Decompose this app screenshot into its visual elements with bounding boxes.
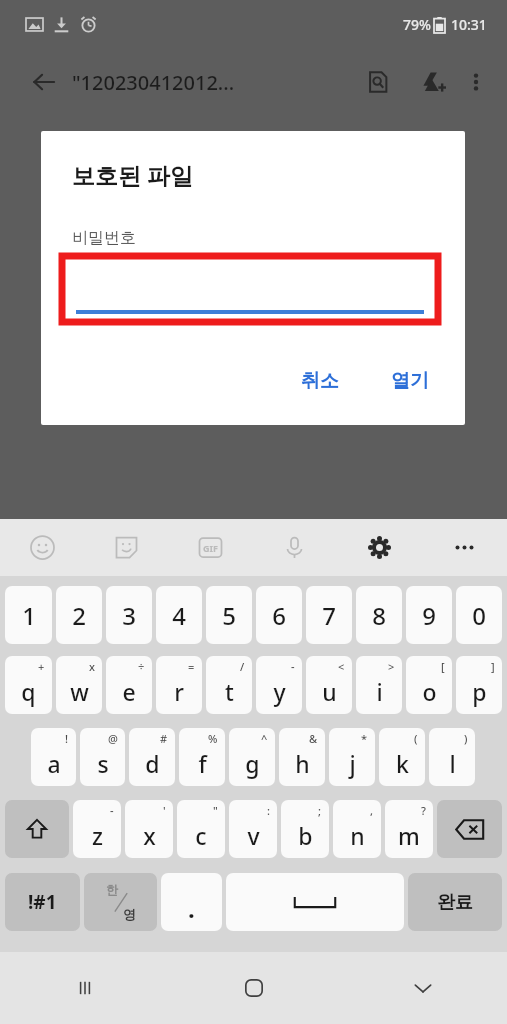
button[interactable]: 3 — [106, 586, 152, 644]
button[interactable]: 열기 — [377, 361, 443, 401]
staticText: - — [291, 659, 295, 674]
staticText: - — [110, 803, 114, 818]
staticText: l — [449, 748, 456, 779]
button[interactable]: ] — [456, 656, 502, 714]
button[interactable]: & — [279, 728, 325, 786]
staticText: . — [188, 892, 195, 925]
button[interactable]: [ — [406, 656, 452, 714]
staticText: ? — [421, 803, 426, 818]
button[interactable]: < — [306, 656, 352, 714]
button[interactable]: 6 — [256, 586, 302, 644]
staticText: 0 — [472, 599, 486, 632]
button[interactable]: " — [177, 800, 225, 858]
button[interactable]: 7 — [306, 586, 352, 644]
button[interactable]: Korean English toggle — [84, 873, 157, 931]
staticText: ^ — [261, 731, 268, 746]
button[interactable]: Recents — [0, 952, 169, 1024]
button[interactable]: Find in document — [357, 61, 399, 103]
button[interactable]: * — [329, 728, 375, 786]
button[interactable]: Add to Drive — [413, 61, 455, 103]
staticText: f — [198, 748, 207, 779]
button[interactable]: ( — [379, 728, 425, 786]
staticText: a — [47, 748, 61, 779]
staticText: / — [240, 659, 245, 674]
button[interactable]: ! — [31, 728, 76, 786]
button[interactable]: - — [256, 656, 302, 714]
staticText: x — [143, 820, 156, 851]
button[interactable]: ? — [385, 800, 433, 858]
button[interactable]: + — [5, 656, 52, 714]
button[interactable]: !#1 — [5, 873, 80, 931]
staticText: u — [322, 676, 337, 707]
button[interactable]: 0 — [456, 586, 502, 644]
button[interactable]: : — [229, 800, 277, 858]
staticText: 영 — [123, 906, 136, 922]
button[interactable]: / — [206, 656, 252, 714]
button[interactable]: 취소 — [287, 361, 353, 401]
button[interactable]: 5 — [206, 586, 252, 644]
button[interactable]: Home — [169, 952, 338, 1024]
staticText: < — [338, 659, 345, 674]
button[interactable]: Shift — [5, 800, 69, 858]
button[interactable]: 8 — [356, 586, 402, 644]
staticText: = — [188, 659, 195, 674]
staticText: 열기 — [391, 369, 429, 393]
button[interactable]: 2 — [56, 586, 102, 644]
button[interactable]: Keyboard settings — [337, 519, 422, 576]
staticText: 6 — [272, 599, 286, 632]
button[interactable]: > — [356, 656, 402, 714]
button[interactable]: 9 — [406, 586, 452, 644]
button[interactable]: = — [156, 656, 202, 714]
button[interactable]: 1 — [5, 586, 52, 644]
button[interactable]: - — [73, 800, 121, 858]
button[interactable]: ' — [125, 800, 173, 858]
staticText: h — [295, 748, 310, 779]
staticText: 한 — [106, 882, 118, 897]
staticText: w — [70, 676, 89, 707]
button[interactable]: @ — [80, 728, 125, 786]
button[interactable]: ÷ — [106, 656, 152, 714]
staticText: 7 — [322, 599, 336, 632]
button[interactable]: Voice input — [252, 519, 337, 576]
button[interactable]: 4 — [156, 586, 202, 644]
staticText: + — [38, 659, 45, 674]
staticText: b — [298, 820, 313, 851]
staticText: g — [245, 748, 260, 779]
button[interactable]: More keyboard options — [422, 519, 507, 576]
button[interactable]: Space — [226, 873, 404, 931]
staticText: s — [97, 748, 109, 779]
button[interactable]: GIF — [168, 519, 252, 576]
button[interactable]: Back — [22, 60, 66, 104]
button[interactable]: ; — [281, 800, 329, 858]
staticText: " — [213, 803, 218, 818]
staticText: t — [225, 676, 234, 707]
staticText: y — [273, 676, 286, 707]
button[interactable]: x — [56, 656, 102, 714]
button[interactable]: ) — [429, 728, 475, 786]
staticText: 9 — [422, 599, 436, 632]
button[interactable]: 완료 — [408, 873, 502, 931]
button[interactable]: Backspace — [437, 800, 502, 858]
button[interactable]: Emoji — [0, 519, 84, 576]
button[interactable]: . — [161, 873, 222, 931]
staticText: ] — [491, 659, 495, 674]
staticText: 8 — [372, 599, 386, 632]
button[interactable]: Stickers — [84, 519, 168, 576]
button[interactable] — [62, 256, 438, 322]
button[interactable]: More options — [455, 61, 497, 103]
button[interactable]: ^ — [229, 728, 275, 786]
staticText: x — [89, 659, 95, 674]
staticText: d — [145, 748, 160, 779]
staticText: 2 — [72, 599, 86, 632]
staticText: 10:31 — [451, 15, 487, 34]
staticText: & — [309, 731, 318, 746]
staticText: % — [208, 731, 218, 746]
button[interactable]: % — [179, 728, 225, 786]
staticText: # — [160, 731, 168, 746]
staticText: "120230412012... — [72, 69, 235, 96]
button[interactable]: # — [129, 728, 175, 786]
button[interactable]: , — [333, 800, 381, 858]
staticText: q — [21, 676, 36, 707]
button[interactable]: Hide keyboard — [338, 952, 507, 1024]
staticText: n — [350, 820, 365, 851]
